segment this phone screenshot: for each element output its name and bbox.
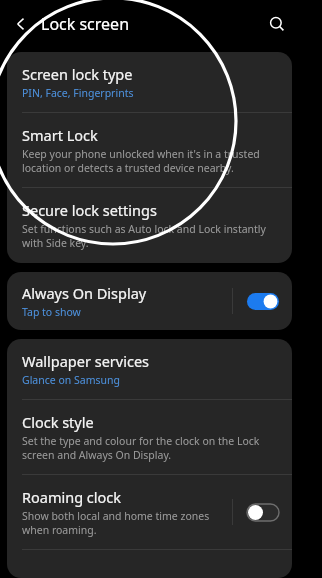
button[interactable]: Search bbox=[262, 9, 292, 39]
staticText: Lock screen bbox=[41, 13, 130, 35]
button[interactable]: Roaming clock bbox=[7, 475, 292, 549]
button[interactable]: Clock style bbox=[7, 400, 292, 474]
button[interactable]: Smart Lock bbox=[7, 113, 292, 187]
staticText: Clock style bbox=[22, 412, 94, 432]
staticText: Smart Lock bbox=[22, 125, 98, 145]
button[interactable]: Back bbox=[6, 9, 36, 39]
button[interactable]: FaceWidgets bbox=[7, 550, 292, 578]
staticText: PIN, Face, Fingerprints bbox=[22, 86, 134, 100]
staticText: Wallpaper services bbox=[22, 351, 150, 371]
staticText: Keep your phone unlocked when it's in a … bbox=[22, 147, 282, 175]
button[interactable]: Screen lock type bbox=[7, 52, 292, 112]
staticText: Screen lock type bbox=[22, 64, 133, 84]
staticText: Set the type and colour for the clock on… bbox=[22, 434, 282, 462]
button[interactable]: Roaming clock toggle bbox=[244, 497, 282, 527]
button[interactable]: Always On Display toggle bbox=[244, 286, 282, 316]
button[interactable]: Secure lock settings bbox=[7, 188, 292, 263]
staticText: Set functions such as Auto lock and Lock… bbox=[22, 222, 282, 250]
button[interactable]: Always On Display bbox=[7, 272, 292, 330]
staticText: Always On Display bbox=[22, 283, 147, 303]
staticText: Roaming clock bbox=[22, 487, 122, 507]
staticText: Show both local and home time zones when… bbox=[22, 509, 224, 537]
button[interactable]: Wallpaper services bbox=[7, 339, 292, 399]
staticText: Tap to show bbox=[22, 305, 81, 319]
staticText: Glance on Samsung bbox=[22, 373, 120, 387]
staticText: Secure lock settings bbox=[22, 200, 157, 220]
